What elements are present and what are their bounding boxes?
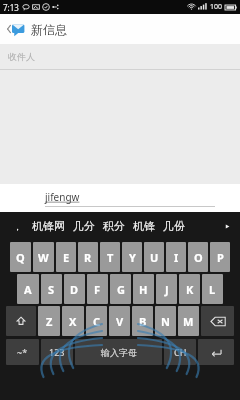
button[interactable]: 机锋网 <box>32 212 65 240</box>
staticText: 123 <box>49 346 65 358</box>
button[interactable]: K <box>179 274 200 304</box>
staticText: 100 <box>210 2 223 12</box>
button[interactable]: H <box>133 274 154 304</box>
staticText: E <box>63 250 70 265</box>
staticText: O <box>194 250 203 265</box>
button[interactable]: 输入字母 <box>75 339 162 365</box>
staticText: 输入字母 <box>101 347 137 358</box>
button[interactable]: E <box>56 242 76 272</box>
staticText: X <box>69 314 77 329</box>
staticText: R <box>84 250 92 265</box>
button[interactable]: D <box>64 274 85 304</box>
button[interactable]: G <box>110 274 131 304</box>
button[interactable]: jifengw <box>0 184 240 212</box>
button[interactable]: More candidates <box>220 212 234 240</box>
button[interactable]: 几分 <box>73 212 95 240</box>
staticText: ~* <box>17 346 28 358</box>
staticText: 收件人 <box>8 51 35 62</box>
staticText: I <box>174 250 179 265</box>
staticText: ， <box>13 221 22 232</box>
button[interactable]: L <box>202 274 223 304</box>
staticText: G <box>117 282 125 297</box>
staticText: CH <box>174 346 187 358</box>
staticText: L <box>209 282 216 297</box>
staticText: M <box>183 314 194 329</box>
staticText: Q <box>16 250 25 265</box>
staticText: 机锋 <box>133 219 155 233</box>
button[interactable]: M <box>178 306 199 336</box>
button[interactable]: O <box>188 242 208 272</box>
button[interactable]: Enter <box>198 339 234 365</box>
staticText: V <box>116 314 124 329</box>
staticText: T <box>107 250 114 265</box>
staticText: Y <box>129 250 136 265</box>
button[interactable]: 积分 <box>103 212 125 240</box>
staticText: 积分 <box>103 219 125 233</box>
button[interactable]: I <box>166 242 186 272</box>
staticText: 新信息 <box>31 22 67 37</box>
button[interactable]: CH <box>164 339 196 365</box>
staticText: U <box>150 250 159 265</box>
staticText: K <box>186 282 194 297</box>
button[interactable]: Q <box>10 242 31 272</box>
staticText: H <box>139 282 148 297</box>
button[interactable]: 机锋 <box>133 212 155 240</box>
button[interactable]: C <box>86 306 107 336</box>
button[interactable]: N <box>155 306 176 336</box>
button[interactable]: W <box>33 242 54 272</box>
button[interactable]: Shift <box>6 306 36 336</box>
button[interactable]: X <box>62 306 84 336</box>
button[interactable]: Back <box>5 16 27 42</box>
button[interactable]: V <box>109 306 130 336</box>
button[interactable]: 几份 <box>163 212 185 240</box>
staticText: C <box>93 314 101 329</box>
staticText: P <box>217 250 224 265</box>
staticText: 7:13 <box>3 2 19 13</box>
staticText: D <box>70 282 79 297</box>
staticText: F <box>94 282 101 297</box>
button[interactable]: B <box>132 306 153 336</box>
button[interactable]: Backspace <box>201 306 234 336</box>
button[interactable]: ~* <box>6 339 39 365</box>
staticText: 机锋网 <box>32 219 65 233</box>
button[interactable]: 收件人 <box>0 44 240 69</box>
button[interactable]: U <box>144 242 164 272</box>
staticText: 几份 <box>163 219 185 233</box>
button[interactable]: Y <box>122 242 142 272</box>
button[interactable]: ， <box>6 212 28 240</box>
staticText: J <box>165 282 169 297</box>
staticText: N <box>161 314 170 329</box>
button[interactable]: S <box>41 274 62 304</box>
staticText: B <box>139 314 147 329</box>
button[interactable]: F <box>87 274 108 304</box>
staticText: Z <box>46 314 53 329</box>
button[interactable]: J <box>156 274 177 304</box>
staticText: A <box>24 282 32 297</box>
button[interactable]: A <box>17 274 39 304</box>
button[interactable]: R <box>78 242 98 272</box>
button[interactable]: T <box>100 242 120 272</box>
staticText: jifengw <box>45 190 80 204</box>
staticText: S <box>48 282 55 297</box>
staticText: W <box>38 250 49 265</box>
staticText: 几分 <box>73 219 95 233</box>
button[interactable]: P <box>210 242 230 272</box>
button[interactable]: Back <box>0 14 240 44</box>
button[interactable]: Z <box>38 306 60 336</box>
button[interactable]: 123 <box>41 339 73 365</box>
